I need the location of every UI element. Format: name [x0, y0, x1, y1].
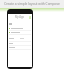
- staticText: Create a simple layout with Compose: [4, 2, 60, 6]
- staticText: My App: [15, 15, 25, 19]
- button[interactable]: [9, 28, 31, 29]
- button[interactable]: New item: [29, 16, 31, 19]
- button[interactable]: [9, 32, 31, 33]
- button[interactable]: [8, 14, 32, 20]
